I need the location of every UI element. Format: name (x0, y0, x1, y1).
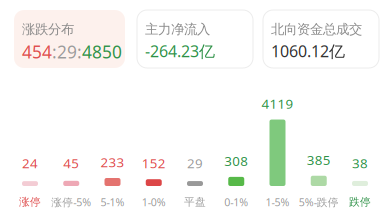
staticText: 0-1% (224, 195, 248, 209)
staticText: 5%-跌停 (299, 195, 339, 209)
staticText: 385 (307, 151, 331, 169)
staticText: 1060.12亿 (271, 40, 345, 62)
staticText: 454 (22, 40, 52, 63)
staticText: 29 (57, 40, 77, 63)
staticText: 1-0% (142, 195, 166, 209)
staticText: 跌停 (349, 195, 371, 208)
button[interactable]: 北向资金总成交 (263, 10, 379, 68)
staticText: 主力净流入 (145, 21, 210, 37)
staticText: 平盘 (184, 195, 206, 208)
staticText: 涨跌分布 (22, 21, 74, 37)
button[interactable]: 主力净流入 (137, 10, 253, 68)
staticText: 涨停 (19, 195, 41, 208)
staticText: 152 (142, 154, 166, 172)
button[interactable]: 涨跌分布 (14, 10, 125, 68)
staticText: 29 (187, 154, 203, 172)
staticText: : (77, 40, 82, 63)
staticText: 4119 (261, 95, 293, 112)
staticText: : (52, 40, 57, 63)
staticText: 233 (100, 153, 124, 171)
staticText: 北向资金总成交 (271, 21, 362, 37)
staticText: 308 (224, 152, 248, 170)
staticText: 4850 (82, 40, 122, 63)
staticText: 24 (22, 154, 38, 172)
staticText: 38 (352, 154, 368, 172)
staticText: 涨停-5% (51, 195, 91, 209)
staticText: 5-1% (100, 195, 124, 209)
staticText: 1-5% (265, 195, 289, 209)
staticText: 45 (63, 154, 79, 172)
staticText: -264.23亿 (145, 40, 215, 62)
